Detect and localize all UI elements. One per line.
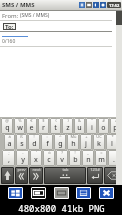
- staticText: ): [67, 118, 69, 123]
- button[interactable]: Start: [8, 187, 23, 199]
- staticText: _: [87, 150, 89, 155]
- staticText: z: [66, 123, 70, 133]
- staticText: -: [22, 150, 24, 155]
- staticText: p: [113, 123, 118, 133]
- staticText: Mü: [70, 134, 77, 139]
- button[interactable]: ): [62, 118, 73, 134]
- button[interactable]: ': [30, 150, 42, 166]
- staticText: (SMS / MMS): [20, 12, 50, 19]
- staticText: ;: [8, 150, 10, 155]
- staticText: ö: [48, 150, 51, 155]
- button[interactable]: =: [95, 150, 107, 166]
- staticText: 480x800 41kb PNG: [18, 202, 105, 214]
- button[interactable]: ;: [2, 150, 15, 166]
- button[interactable]: .: [108, 150, 120, 166]
- button[interactable]: %: [14, 118, 25, 134]
- staticText: s: [20, 139, 24, 149]
- button[interactable]: tab: [44, 167, 86, 184]
- staticText: l: [111, 139, 113, 149]
- button[interactable]: Keyboard: [54, 187, 69, 199]
- button[interactable]: Screen: [31, 187, 46, 199]
- button[interactable]: ö: [43, 150, 55, 166]
- staticText: :: [46, 134, 48, 139]
- staticText: d: [32, 139, 37, 149]
- staticText: w: [17, 123, 23, 133]
- button[interactable]: 123#: [87, 167, 103, 184]
- staticText: i: [91, 123, 93, 133]
- staticText: ^: [59, 134, 62, 139]
- staticText: =: [100, 150, 103, 155]
- staticText: !: [33, 134, 35, 139]
- staticText: g: [58, 139, 63, 149]
- button[interactable]: ": [86, 118, 97, 134]
- staticText: r: [42, 123, 45, 133]
- staticText: @: [5, 118, 9, 123]
- staticText: ß: [20, 134, 23, 139]
- button[interactable]: UC: [93, 134, 105, 150]
- staticText: b: [73, 155, 78, 165]
- staticText: n: [86, 155, 91, 165]
- staticText: !: [74, 150, 76, 155]
- button[interactable]: +: [80, 134, 92, 150]
- staticText: v: [60, 155, 64, 165]
- button[interactable]: Menu: [76, 187, 91, 199]
- button[interactable]: &: [74, 118, 85, 134]
- staticText: q: [5, 123, 10, 133]
- staticText: x: [34, 155, 38, 165]
- staticText: 123#: [90, 167, 100, 172]
- button[interactable]: €: [26, 118, 37, 134]
- button[interactable]: next: [29, 167, 43, 184]
- button[interactable]: *: [106, 134, 118, 150]
- staticText: 0/160: [2, 38, 16, 45]
- button[interactable]: Close: [99, 187, 114, 199]
- button[interactable]: 0/160: [0, 32, 112, 46]
- staticText: +: [85, 134, 88, 139]
- staticText: ä: [8, 134, 11, 139]
- button[interactable]: (: [50, 118, 61, 134]
- staticText: tab: [62, 167, 69, 172]
- staticText: t: [54, 123, 57, 133]
- button[interactable]: prev: [15, 167, 28, 184]
- button[interactable]: !: [28, 134, 40, 150]
- staticText: From:: [2, 12, 19, 20]
- staticText: (: [55, 118, 57, 123]
- staticText: /: [115, 118, 117, 123]
- staticText: u: [77, 123, 82, 133]
- button[interactable]: :: [41, 134, 53, 150]
- staticText: f: [46, 139, 49, 149]
- button[interactable]: @: [1, 118, 13, 134]
- staticText: %: [18, 118, 22, 123]
- staticText: ?: [61, 150, 63, 155]
- staticText: UC: [96, 134, 102, 139]
- button[interactable]: !: [69, 150, 81, 166]
- button[interactable]: /: [110, 118, 121, 134]
- staticText: To:: [5, 23, 14, 30]
- staticText: y: [21, 155, 25, 165]
- staticText: o: [101, 123, 106, 133]
- button[interactable]: ?: [56, 150, 68, 166]
- button[interactable]: ^: [54, 134, 66, 150]
- button[interactable]: ä: [4, 134, 15, 150]
- staticText: e: [29, 123, 34, 133]
- button[interactable]: _: [82, 150, 94, 166]
- staticText: next: [32, 167, 41, 172]
- button[interactable]: ß: [16, 134, 27, 150]
- button[interactable]: #: [98, 118, 109, 134]
- staticText: &: [78, 118, 81, 123]
- staticText: prev: [17, 167, 26, 172]
- button[interactable]: Mü: [67, 134, 79, 150]
- staticText: h: [71, 139, 76, 149]
- staticText: a: [7, 139, 12, 149]
- button[interactable]: -: [16, 150, 29, 166]
- button[interactable]: $: [38, 118, 49, 134]
- staticText: 17:52: [109, 3, 120, 8]
- staticText: j: [85, 139, 87, 149]
- staticText: ': [36, 150, 37, 155]
- staticText: ,: [8, 155, 10, 165]
- staticText: k: [97, 139, 101, 149]
- button[interactable]: key: [104, 167, 121, 184]
- button[interactable]: key: [1, 167, 14, 184]
- button[interactable]: To:: [5, 23, 14, 30]
- staticText: m: [98, 155, 105, 165]
